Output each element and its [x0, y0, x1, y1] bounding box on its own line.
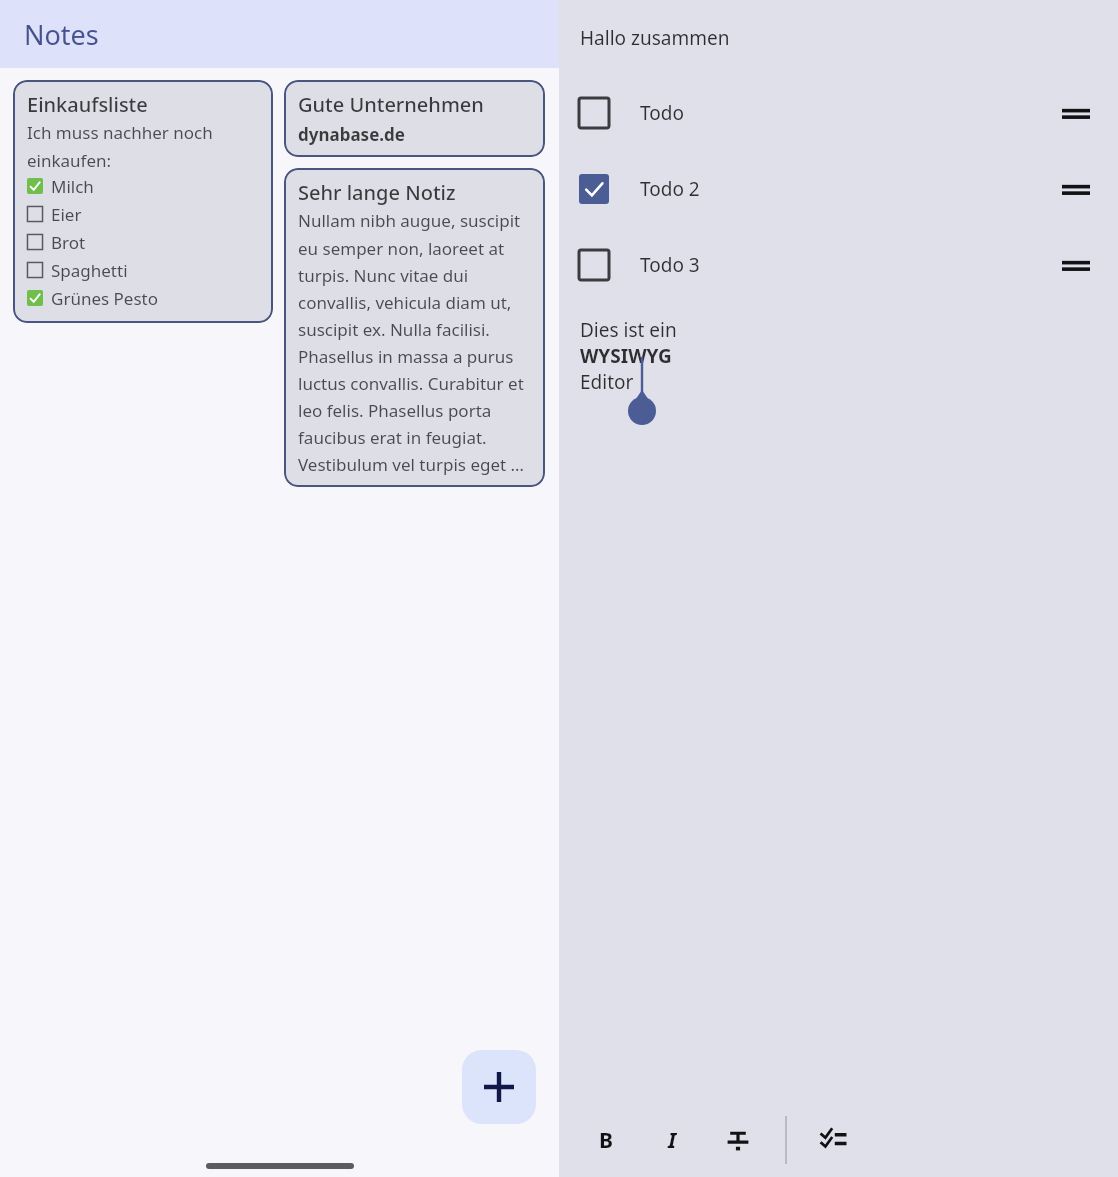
button[interactable]: Sehr lange Notiz: [284, 168, 545, 487]
button[interactable]: Einkaufsliste: [13, 80, 273, 323]
staticText: Brot: [51, 231, 86, 254]
button[interactable]: Strikethrough: [705, 1107, 771, 1173]
staticText: Todo: [640, 100, 684, 126]
staticText: Editor: [580, 369, 634, 395]
staticText: Todo 3: [640, 252, 700, 278]
staticText: B: [599, 1126, 613, 1155]
staticText: Ich muss nachher noch einkaufen:: [27, 121, 259, 172]
button[interactable]: Gute Unternehmen: [284, 80, 545, 157]
button[interactable]: Checklist: [801, 1107, 867, 1173]
staticText: Todo 2: [640, 176, 700, 202]
staticText: Hallo zusammen: [580, 25, 730, 51]
button[interactable]: Italic: [639, 1107, 705, 1173]
button[interactable]: Todo 3: [559, 227, 1118, 303]
staticText: Grünes Pesto: [51, 287, 158, 310]
staticText: Einkaufsliste: [27, 91, 148, 118]
staticText: WYSIWYG: [580, 343, 672, 369]
staticText: Sehr lange Notiz: [298, 179, 456, 206]
button[interactable]: Reorder Todo 3: [1054, 243, 1098, 287]
button[interactable]: Bold: [573, 1107, 639, 1173]
button[interactable]: Reorder Todo 2: [1054, 167, 1098, 211]
staticText: dynabase.de: [298, 123, 405, 146]
button[interactable]: Add note: [462, 1050, 536, 1124]
staticText: I: [668, 1126, 677, 1155]
button[interactable]: Milch: [27, 172, 259, 200]
button[interactable]: Todo 2: [559, 151, 1118, 227]
button[interactable]: Todo: [559, 75, 1118, 151]
staticText: Gute Unternehmen: [298, 91, 484, 118]
staticText: Nullam nibh augue, suscipit eu semper no…: [298, 209, 531, 476]
staticText: Notes: [24, 16, 99, 53]
staticText: Milch: [51, 175, 94, 198]
button[interactable]: Grünes Pesto: [27, 284, 259, 312]
button[interactable]: Spaghetti: [27, 256, 259, 284]
button[interactable]: Eier: [27, 200, 259, 228]
button[interactable]: Reorder Todo: [1054, 91, 1098, 135]
button[interactable]: Brot: [27, 228, 259, 256]
staticText: Eier: [51, 203, 82, 226]
staticText: Spaghetti: [51, 259, 128, 282]
staticText: Dies ist ein: [580, 317, 677, 343]
